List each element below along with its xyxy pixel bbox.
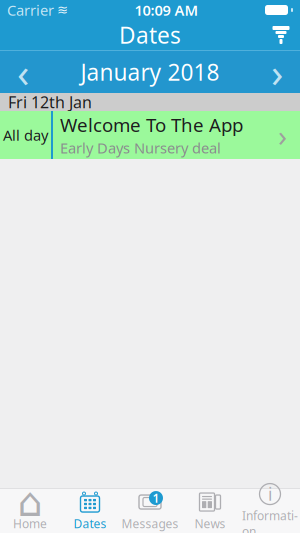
button[interactable]: 1 (120, 489, 180, 533)
staticText: 10:09 AM (134, 0, 198, 20)
button[interactable]: Dates (60, 489, 120, 533)
staticText: Welcome To The App (60, 112, 243, 137)
button[interactable]: i (240, 489, 300, 533)
button[interactable]: ⌂ (0, 489, 60, 533)
staticText: News (194, 515, 225, 531)
staticText: ⌂ (17, 479, 42, 525)
staticText: Information (242, 508, 298, 533)
staticText: All day (3, 125, 48, 145)
staticText: ≋ (57, 2, 68, 17)
button[interactable]: Filter (262, 20, 300, 50)
staticText: Dates (119, 20, 181, 50)
button[interactable]: News (180, 489, 240, 533)
staticText: Messages (121, 515, 178, 531)
staticText: Dates (73, 515, 106, 531)
staticText: › (278, 115, 287, 154)
staticText: i (268, 483, 272, 506)
staticText: ‹ (17, 45, 29, 98)
staticText: › (271, 45, 283, 98)
staticText: 1 (152, 490, 159, 506)
staticText: Carrier (7, 0, 54, 20)
staticText: Home (13, 515, 47, 531)
button[interactable]: Previous month (0, 51, 46, 93)
staticText: January 2018 (80, 57, 219, 87)
button[interactable]: Next month (254, 51, 300, 93)
button[interactable]: All day (0, 111, 300, 159)
staticText: Fri 12th Jan (8, 91, 92, 113)
staticText: Early Days Nursery deal (60, 138, 221, 158)
